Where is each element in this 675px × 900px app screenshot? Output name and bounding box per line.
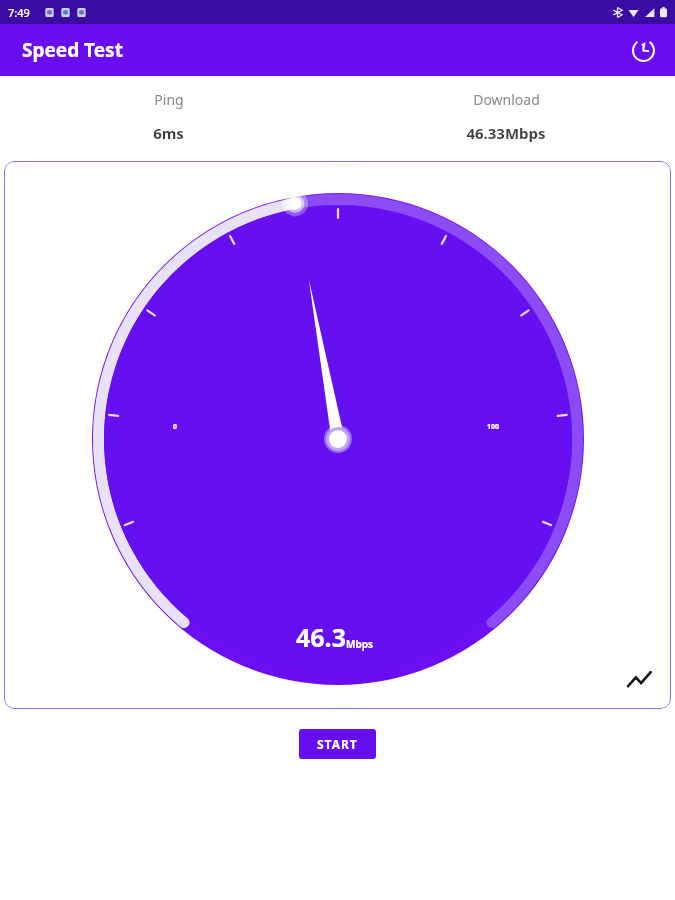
button[interactable]: Download xyxy=(337,90,675,143)
staticText: Speed Test xyxy=(22,37,123,63)
button[interactable]: Graph xyxy=(621,663,657,699)
button[interactable]: Ping xyxy=(0,90,337,143)
staticText: 46.3 xyxy=(296,620,346,654)
staticText: 0 xyxy=(173,422,178,432)
staticText: 7:49 xyxy=(8,5,30,20)
button[interactable]: History xyxy=(623,30,663,70)
staticText: 6ms xyxy=(153,123,184,143)
staticText: Mbps xyxy=(346,637,374,651)
staticText: 100 xyxy=(487,422,500,432)
staticText: Ping xyxy=(154,90,184,109)
staticText: START xyxy=(317,736,358,752)
button[interactable]: START xyxy=(299,729,376,759)
staticText: Download xyxy=(473,90,540,109)
staticText: 46.33Mbps xyxy=(466,123,546,143)
